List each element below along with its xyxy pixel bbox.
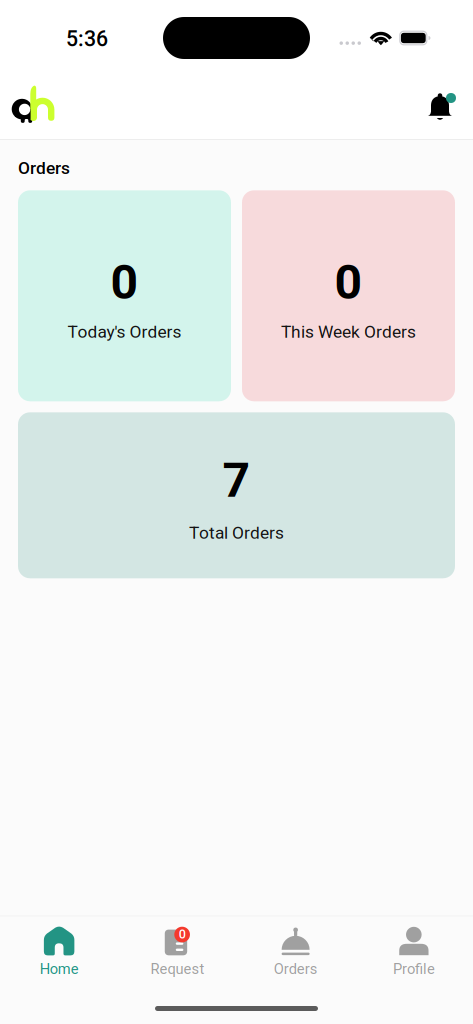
staticText: Orders — [274, 960, 318, 978]
button[interactable]: Notifications — [427, 93, 473, 122]
staticText: Profile — [393, 960, 435, 978]
staticText: 0 — [110, 254, 138, 310]
button[interactable]: Home — [0, 916, 118, 988]
button[interactable]: 7 — [18, 412, 455, 578]
staticText: Today's Orders — [67, 322, 181, 342]
button[interactable]: Orders — [236, 916, 355, 988]
button[interactable]: Profile — [355, 916, 473, 988]
staticText: Total Orders — [189, 523, 284, 543]
staticText: Request — [150, 960, 204, 978]
staticText: 0 — [334, 254, 362, 310]
button[interactable]: Home — [0, 76, 68, 139]
staticText: This Week Orders — [281, 322, 416, 342]
staticText: 0 — [179, 927, 186, 942]
staticText: Orders — [18, 158, 70, 178]
button[interactable]: 0 — [118, 916, 236, 988]
button[interactable]: 0 — [242, 190, 455, 401]
staticText: 5:36 — [66, 26, 108, 51]
staticText: 7 — [222, 452, 250, 508]
staticText: Home — [40, 960, 79, 978]
button[interactable]: 0 — [18, 190, 231, 401]
